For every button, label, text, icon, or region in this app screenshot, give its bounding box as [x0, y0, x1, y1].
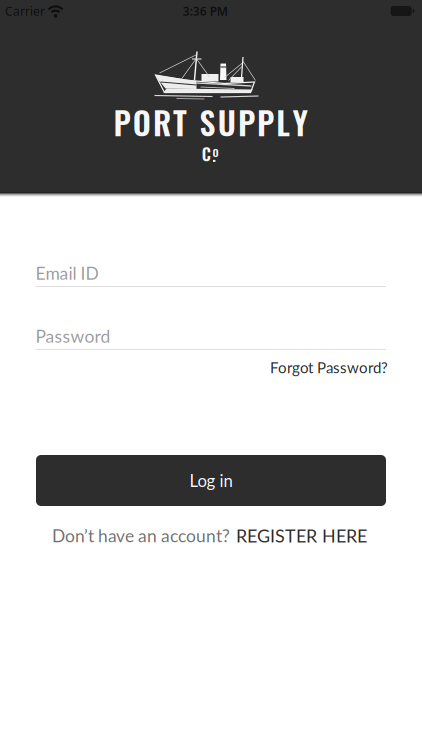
- staticText: R: [153, 99, 171, 145]
- staticText: C: [202, 141, 211, 166]
- staticText: Y: [292, 99, 307, 145]
- button[interactable]: Email ID: [35, 263, 386, 287]
- staticText: O: [213, 144, 219, 160]
- staticText: Password: [35, 325, 110, 346]
- staticText: P: [113, 99, 130, 145]
- button[interactable]: Forgot Password?: [270, 358, 388, 377]
- staticText: Email ID: [35, 263, 98, 284]
- staticText: U: [218, 99, 236, 145]
- staticText: Carrier: [5, 3, 45, 19]
- staticText: L: [276, 99, 290, 145]
- button[interactable]: Log in: [36, 455, 386, 506]
- button[interactable]: REGISTER HERE: [236, 525, 367, 546]
- staticText: REGISTER HERE: [236, 525, 367, 546]
- staticText: Forgot Password?: [270, 358, 388, 377]
- staticText: P: [257, 99, 274, 145]
- staticText: Log in: [189, 470, 232, 491]
- button[interactable]: Password: [35, 325, 386, 350]
- staticText: P: [238, 99, 255, 145]
- staticText: O: [133, 99, 151, 145]
- staticText: 3:36 PM: [183, 3, 228, 19]
- staticText: T: [173, 99, 187, 145]
- staticText: S: [199, 99, 215, 145]
- staticText: Don’t have an account?: [52, 525, 230, 546]
- staticText: [189, 99, 197, 145]
